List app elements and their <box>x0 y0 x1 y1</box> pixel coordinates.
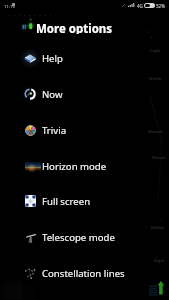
staticText: Constellation lines <box>42 267 125 280</box>
button[interactable]: Help <box>0 40 169 76</box>
staticText: Trivia <box>42 124 67 137</box>
button[interactable]: Now <box>0 76 169 112</box>
button[interactable]: Telescope mode <box>0 219 169 255</box>
staticText: Full screen <box>42 195 91 208</box>
staticText: Now <box>42 88 63 101</box>
staticText: Shedir <box>149 76 162 82</box>
staticText: Horizon mode <box>42 160 107 173</box>
staticText: Almach <box>148 129 163 135</box>
button[interactable]: Trivia <box>0 112 169 148</box>
staticText: 52% <box>156 3 165 9</box>
staticText: 11:15 <box>4 3 15 9</box>
button[interactable]: Constellation lines <box>0 255 169 291</box>
staticText: Telescope mode <box>42 231 115 244</box>
staticText: Caph <box>150 48 161 54</box>
button[interactable]: Horizon mode <box>0 148 169 184</box>
staticText: More options <box>36 21 113 34</box>
staticText: Mirach <box>152 155 166 161</box>
staticText: Mirfak <box>151 225 164 231</box>
button[interactable]: Full screen <box>0 183 169 219</box>
staticText: Help <box>42 52 63 65</box>
staticText: Algol <box>154 258 164 264</box>
staticText: 4G <box>137 3 143 9</box>
